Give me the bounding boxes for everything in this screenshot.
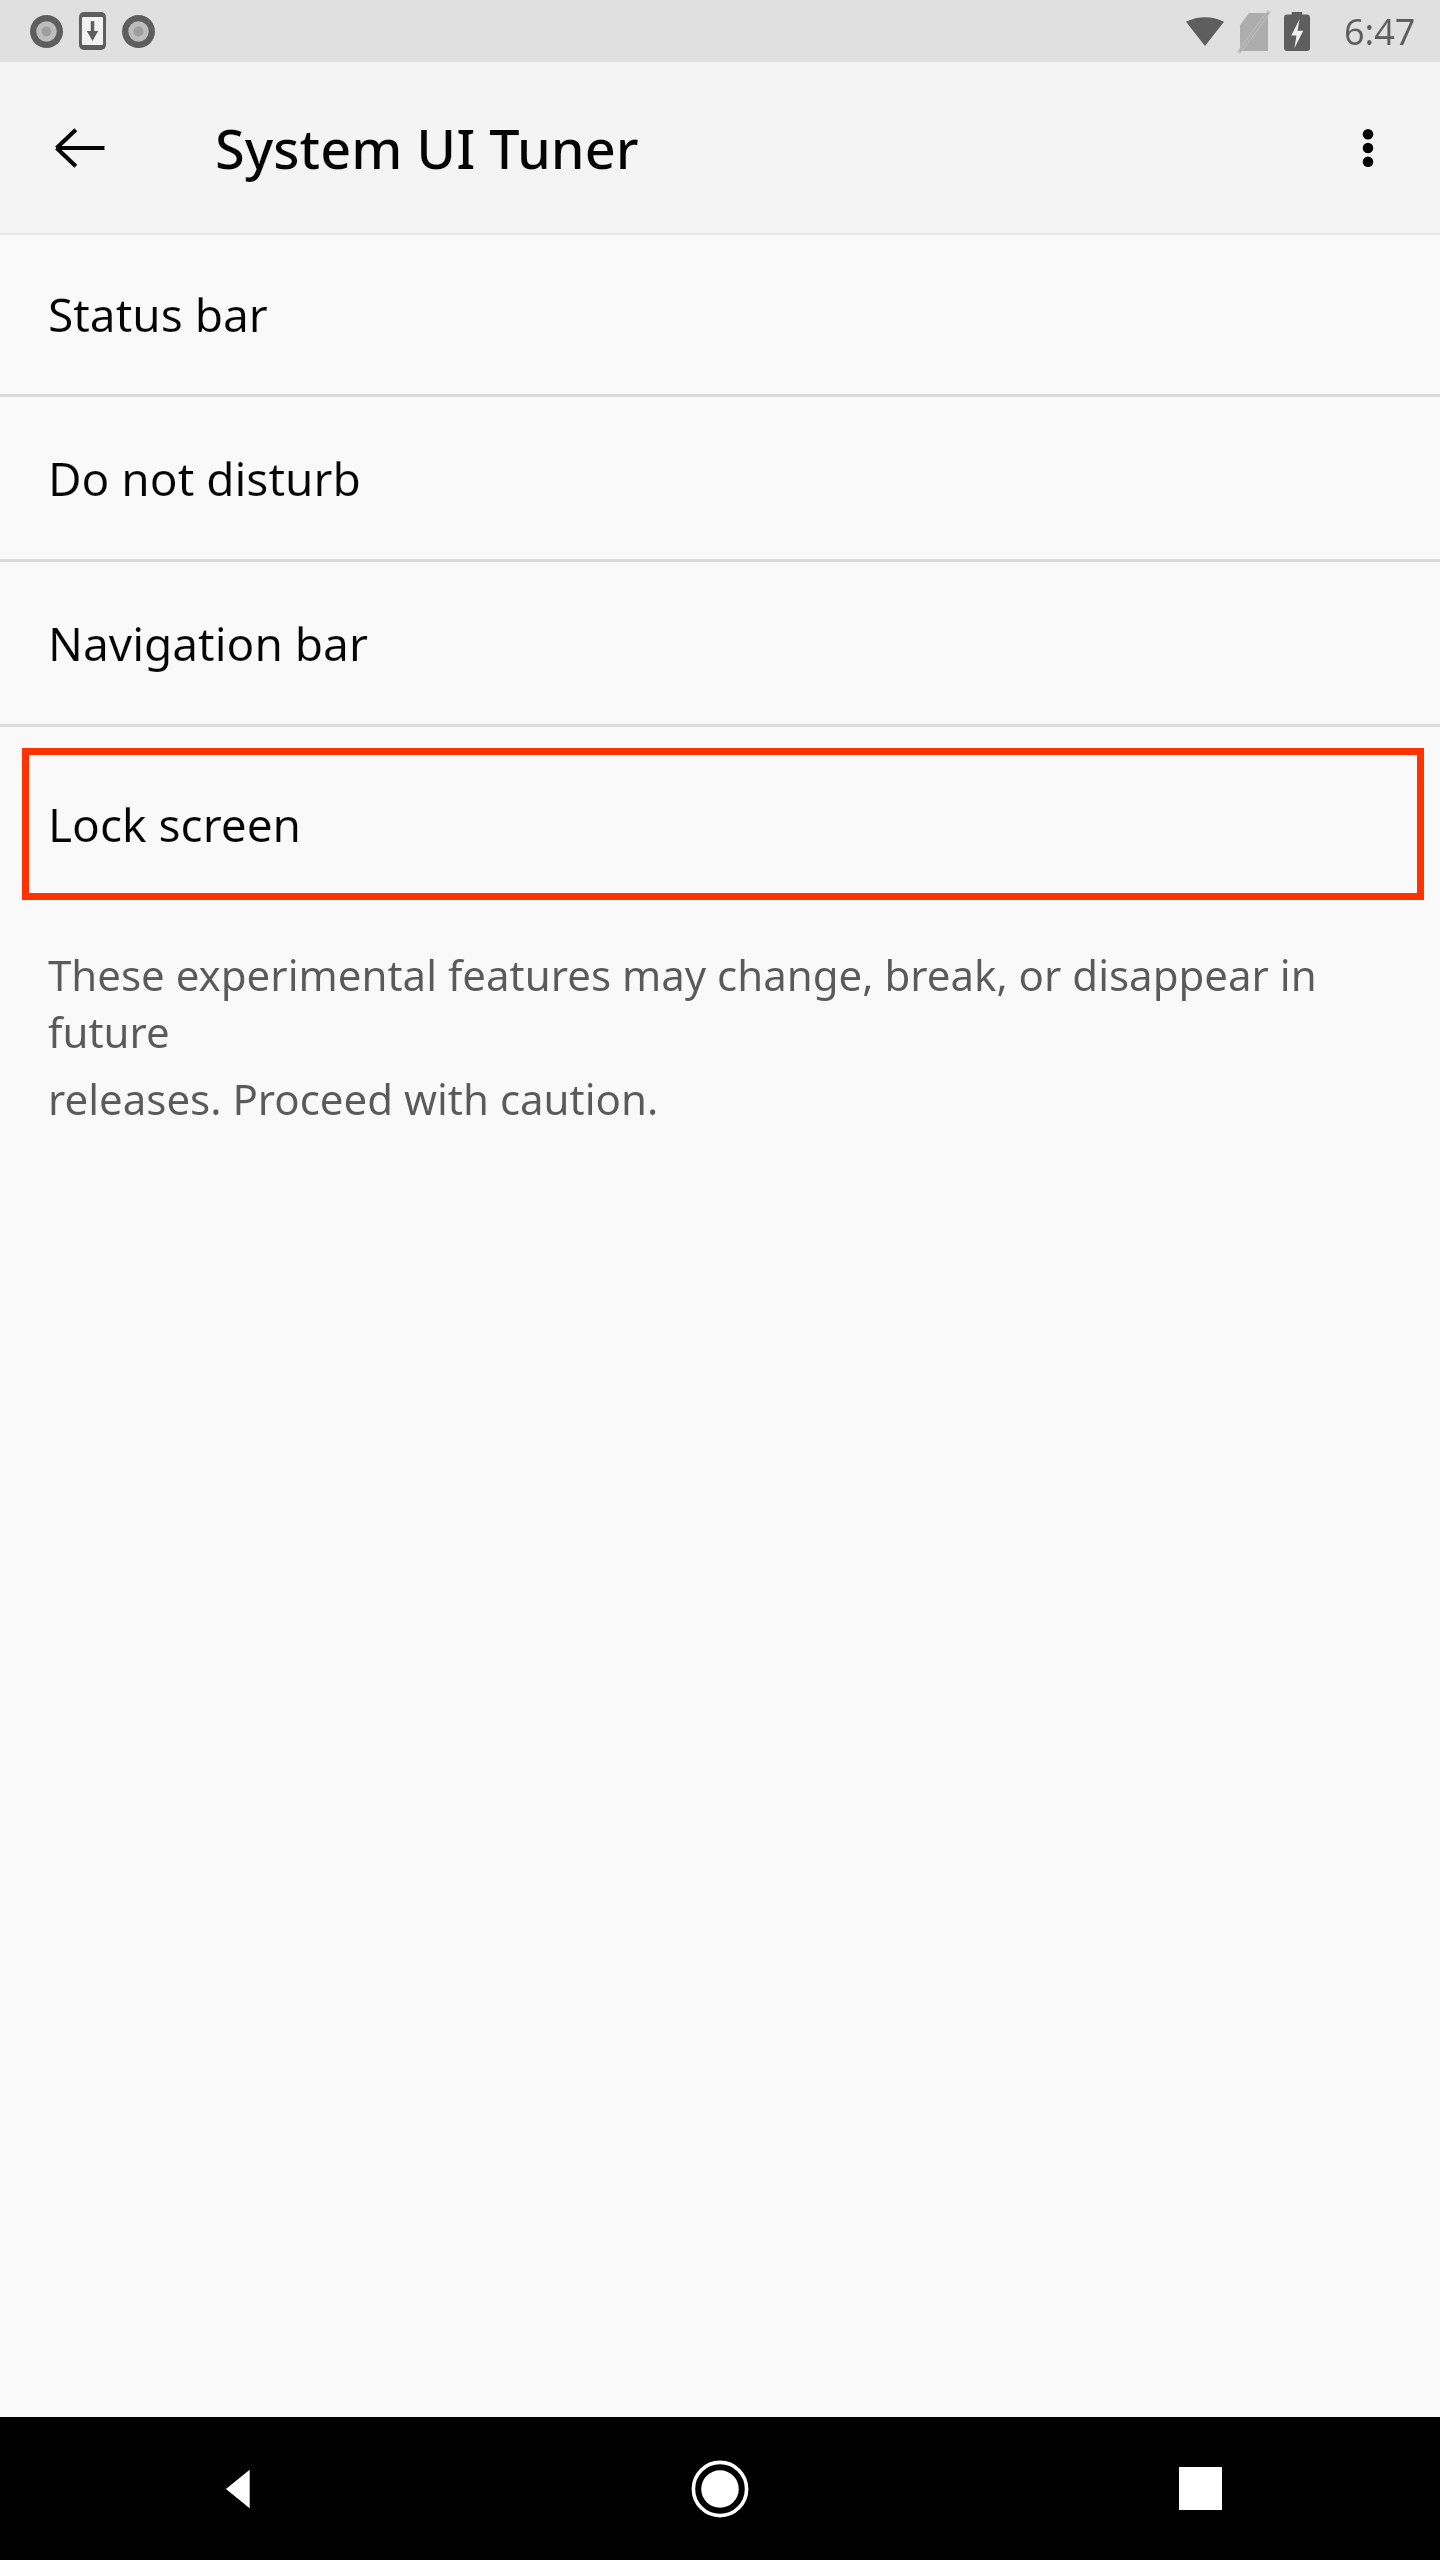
staticText: System UI Tuner xyxy=(215,111,639,185)
staticText: Navigation bar xyxy=(48,612,368,675)
button[interactable]: Lock screen xyxy=(29,755,1417,893)
staticText: Status bar xyxy=(48,283,268,346)
staticText: Lock screen xyxy=(48,793,302,856)
staticText: 6:47 xyxy=(1344,7,1416,56)
staticText: Do not disturb xyxy=(48,447,361,510)
button[interactable]: Navigation bar xyxy=(0,562,1440,724)
button[interactable]: Back xyxy=(0,2417,480,2560)
button[interactable]: Do not disturb xyxy=(0,397,1440,559)
staticText: releases. Proceed with caution. xyxy=(48,1070,659,1127)
button[interactable]: Navigate up xyxy=(38,106,122,190)
button[interactable]: More options xyxy=(1326,106,1410,190)
staticText: These experimental features may change, … xyxy=(48,946,1400,1060)
button[interactable]: Status bar xyxy=(0,235,1440,394)
button[interactable]: Recent apps xyxy=(960,2417,1440,2560)
button[interactable]: Home xyxy=(480,2417,960,2560)
